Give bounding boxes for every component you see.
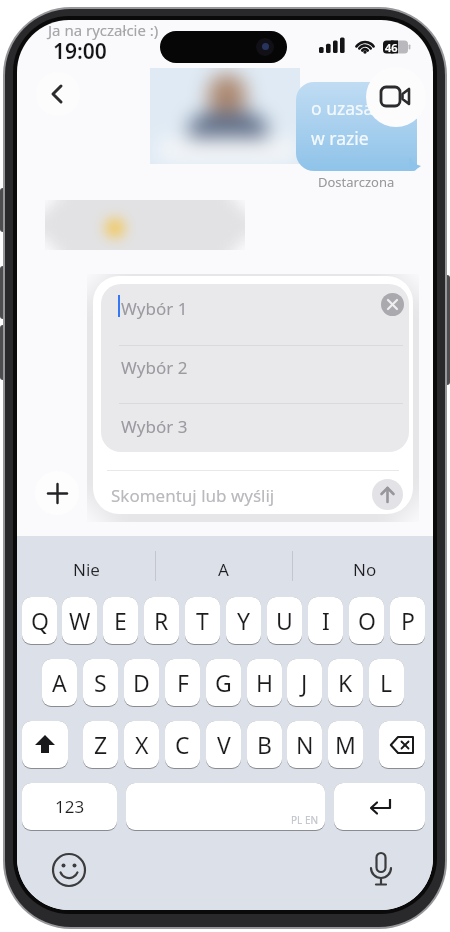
staticText: F	[177, 667, 189, 698]
staticText: K	[338, 667, 353, 698]
button[interactable]	[35, 471, 79, 515]
button[interactable]: N	[287, 721, 322, 768]
staticText: B	[257, 729, 272, 760]
button[interactable]: G	[206, 659, 241, 706]
staticText: Skomentuj lub wyślij	[111, 484, 275, 507]
staticText: R	[154, 605, 169, 636]
button[interactable]: R	[144, 597, 179, 644]
staticText: PL EN	[291, 813, 319, 827]
button[interactable]	[363, 852, 399, 888]
staticText: S	[94, 667, 107, 698]
staticText: D	[133, 667, 150, 698]
staticText: W	[69, 605, 91, 636]
staticText: Y	[237, 605, 251, 636]
staticText: M	[335, 729, 356, 760]
button[interactable]: F	[165, 659, 200, 706]
staticText: 123	[55, 795, 85, 818]
button[interactable]: H	[247, 659, 282, 706]
button[interactable]	[381, 293, 404, 316]
button[interactable]: M	[328, 721, 363, 768]
staticText: A	[52, 667, 67, 698]
button[interactable]: D	[124, 659, 159, 706]
staticText: C	[175, 729, 190, 760]
button[interactable]: B	[247, 721, 282, 768]
button[interactable]: X	[124, 721, 159, 768]
button[interactable]	[379, 721, 425, 768]
staticText: w razie	[311, 126, 369, 150]
button[interactable]: C	[165, 721, 200, 768]
staticText: G	[215, 667, 232, 698]
button[interactable]: Z	[83, 721, 118, 768]
staticText: A	[218, 558, 229, 581]
staticText: J	[301, 667, 308, 698]
button[interactable]	[22, 721, 68, 768]
staticText: Dostarczona	[318, 173, 395, 191]
staticText: Q	[31, 605, 49, 636]
button[interactable]	[334, 783, 425, 830]
staticText: Nie	[73, 558, 100, 581]
staticText: V	[217, 729, 231, 760]
staticText: P	[401, 605, 415, 636]
staticText: T	[196, 605, 209, 636]
button[interactable]: A	[42, 659, 77, 706]
button[interactable]	[36, 72, 80, 116]
staticText: Wybór 3	[121, 415, 188, 438]
staticText: Ja na ryczałcie :)	[48, 20, 159, 40]
staticText: Wybór 2	[121, 356, 188, 379]
button[interactable]: E	[103, 597, 138, 644]
button[interactable]: Q	[22, 597, 57, 644]
button[interactable]: U	[267, 597, 302, 644]
staticText: Wybór 1	[121, 297, 188, 320]
staticText: No	[353, 558, 377, 581]
staticText: Z	[94, 729, 108, 760]
button[interactable]	[51, 852, 87, 888]
staticText: H	[256, 667, 274, 698]
staticText: 46	[385, 40, 398, 55]
staticText: E	[114, 605, 127, 636]
button[interactable]: S	[83, 659, 118, 706]
button[interactable]: K	[328, 659, 363, 706]
staticText: L	[380, 667, 393, 698]
staticText: I	[322, 605, 330, 636]
button[interactable]: O	[349, 597, 384, 644]
button[interactable]	[372, 479, 403, 510]
button[interactable]	[366, 67, 426, 127]
staticText: 19:00	[53, 37, 107, 66]
button[interactable]: P	[390, 597, 425, 644]
button[interactable]: I	[308, 597, 343, 644]
staticText: X	[135, 729, 149, 760]
staticText: o uzasad	[311, 96, 384, 120]
button[interactable]: T	[185, 597, 220, 644]
button[interactable]: 123	[22, 783, 117, 830]
staticText: U	[276, 605, 293, 636]
button[interactable]: J	[287, 659, 322, 706]
button[interactable]: V	[206, 721, 241, 768]
button[interactable]: L	[369, 659, 404, 706]
button[interactable]: PL EN	[126, 783, 325, 830]
button[interactable]: W	[62, 597, 97, 644]
staticText: N	[296, 729, 314, 760]
button[interactable]: Y	[226, 597, 261, 644]
staticText: O	[358, 605, 376, 636]
